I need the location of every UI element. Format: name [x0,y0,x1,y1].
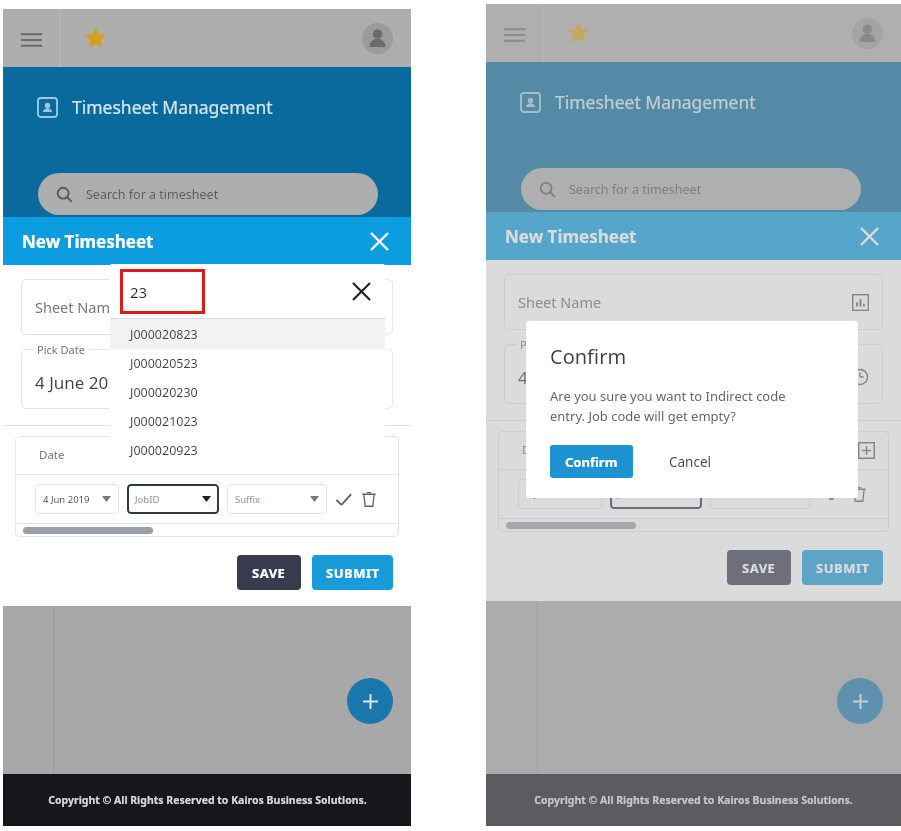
staticText: 4 June 2019 [518,366,611,389]
button[interactable]: J000020523 [110,349,385,378]
staticText: Are you sure you want to Indirect code e… [550,387,786,425]
staticText: Pick Date [37,342,85,357]
button[interactable]: J000020230 [110,378,385,407]
staticText: Confirm [550,343,627,370]
staticText: Copyright © All Rights Reserved to Kairo… [48,793,367,807]
button[interactable]: Add row [858,442,875,459]
staticText: Date [39,447,131,463]
button[interactable]: J000020923 [110,436,385,465]
staticText: JobID [618,488,685,501]
button[interactable]: Search for a timesheet [38,173,378,215]
button[interactable]: Delete row [849,484,869,504]
staticText: J000020523 [130,355,198,372]
staticText: Date [522,442,614,458]
staticText: Sheet Name [518,292,602,312]
button[interactable]: SUBMIT [312,555,393,590]
button[interactable]: Sheet Name [504,274,883,330]
staticText: JobID [135,493,202,506]
button[interactable]: Delete row [359,489,379,509]
button[interactable]: Search for a timesheet [521,168,861,210]
staticText: SAVE [742,559,776,577]
button[interactable]: 4 Jun 2019 [518,479,602,509]
staticText: J000020923 [130,442,198,459]
button[interactable]: Profile [849,15,885,51]
staticText: Cancel [669,453,712,471]
staticText: 4 Jun 2019 [526,488,585,501]
button[interactable]: Menu [3,9,60,67]
button[interactable]: Clear search [347,277,375,305]
staticText: Timesheet Management [72,95,273,119]
button[interactable]: Suffix [227,484,327,514]
button[interactable]: Add timesheet [837,678,883,724]
button[interactable]: Close [366,228,392,254]
staticText: SUBMIT [816,559,870,577]
staticText: JobId [614,442,717,458]
staticText: Confirm [565,453,618,471]
button[interactable]: JobID [610,479,702,509]
staticText: J000020823 [130,326,198,343]
staticText: Search for a timesheet [569,181,702,198]
button[interactable]: Confirm row [823,484,843,504]
button[interactable]: Sheet Name [21,279,393,335]
button[interactable]: SAVE [727,550,791,585]
button[interactable]: 23 [120,269,205,314]
button[interactable]: Cancel [669,445,712,478]
staticText: Suffix [718,488,793,501]
staticText: SUBMIT [326,564,380,582]
button[interactable]: 4 Jun 2019 [35,484,119,514]
button[interactable]: Confirm row [333,489,353,509]
staticText: Timesheet Management [555,90,756,114]
staticText: Sheet Name [35,297,119,317]
staticText: Copyright © All Rights Reserved to Kairo… [534,793,853,807]
button[interactable]: SUBMIT [802,550,883,585]
staticText: J000021023 [130,413,198,430]
staticText: JobId [131,447,234,463]
staticText: 23 [130,282,148,302]
button[interactable]: Favourites [560,15,596,51]
staticText: New Timesheet [505,225,637,248]
button[interactable]: Profile [359,20,395,56]
staticText: SAVE [252,564,286,582]
button[interactable]: Suffix [710,479,810,509]
button[interactable]: J000021023 [110,407,385,436]
button[interactable]: Favourites [77,20,113,56]
staticText: 4 Jun 2019 [43,493,102,506]
button[interactable]: Menu [486,4,543,62]
staticText: Suffix [235,493,310,506]
button[interactable] [504,344,883,404]
staticText: Search for a timesheet [86,186,219,203]
staticText: Pick Date [520,337,568,352]
staticText: J000020230 [130,384,198,401]
button[interactable]: Confirm [550,445,633,478]
button[interactable]: J000020823 [110,319,385,349]
staticText: New Timesheet [22,230,154,253]
button[interactable] [21,349,393,409]
staticText: 4 June 2019 [35,371,128,394]
button[interactable]: JobID [127,484,219,514]
button[interactable]: Close [856,223,882,249]
button[interactable]: SAVE [237,555,301,590]
button[interactable]: Add timesheet [347,678,393,724]
